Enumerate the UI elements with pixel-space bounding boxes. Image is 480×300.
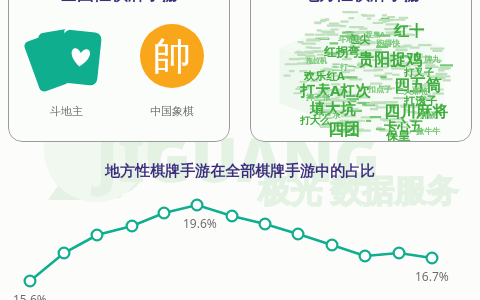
staticText: 贵阳捉鸡 [358,50,422,70]
other: 中国象棋 [140,24,204,88]
staticText: 牌九 [424,54,440,64]
staticText: 三打一 [332,62,356,72]
staticText: 红十 [394,22,424,41]
staticText: 全国性棋牌手游 [60,0,179,5]
staticText: 拖拉机 [306,56,327,65]
staticText: 打滚子 [404,94,437,108]
staticText: 斗地主 [338,34,362,44]
button[interactable]: 地方性棋牌手游 [250,0,472,142]
staticText: 四川麻将 [384,102,448,122]
staticText: 中国象棋 [150,104,194,118]
staticText: 19.6% [183,215,217,231]
staticText: 打大么 [300,114,330,127]
staticText: 掀牛牛 [416,126,440,136]
staticText: 地方性棋牌手游在全部棋牌手游中的占比 [0,162,480,181]
staticText: 斗地主 [50,104,83,118]
staticText: 升级 [420,110,436,120]
staticText: 包尖 [348,32,370,46]
button[interactable]: 斗地主 [16,24,116,118]
staticText: 极光 数据服务 [258,168,459,212]
button[interactable]: 全国性棋牌手游 [8,0,230,142]
staticText: 四五筒 [394,76,442,96]
staticText: 捉黑A [366,30,385,40]
staticText: 跑得快 [376,38,400,48]
other: 斗地主 [27,24,105,92]
staticText: 十三水 [316,110,340,120]
staticText: 帥 [153,32,191,80]
staticText: 红拐弯 [324,44,360,59]
staticText: 二人麻将 [396,86,428,96]
staticText: 打大A杠次 [300,80,371,100]
staticText: 填大坑 [310,100,355,119]
staticText: JIGUANG [96,116,380,200]
button[interactable]: 中国象棋 [122,24,222,118]
staticText: 16.7% [415,268,449,284]
staticText: 打叉子 [404,66,434,79]
staticText: 地方性棋牌手游 [302,0,421,5]
staticText: 四团 [328,120,360,140]
staticText: 扣点子 [368,84,392,94]
staticText: 15.6% [13,291,47,300]
staticText: 保皇 [386,128,410,142]
staticText: 卡心五 [384,118,423,134]
staticText: 摔三张 [306,92,330,102]
staticText: 欢乐红A [304,68,345,83]
